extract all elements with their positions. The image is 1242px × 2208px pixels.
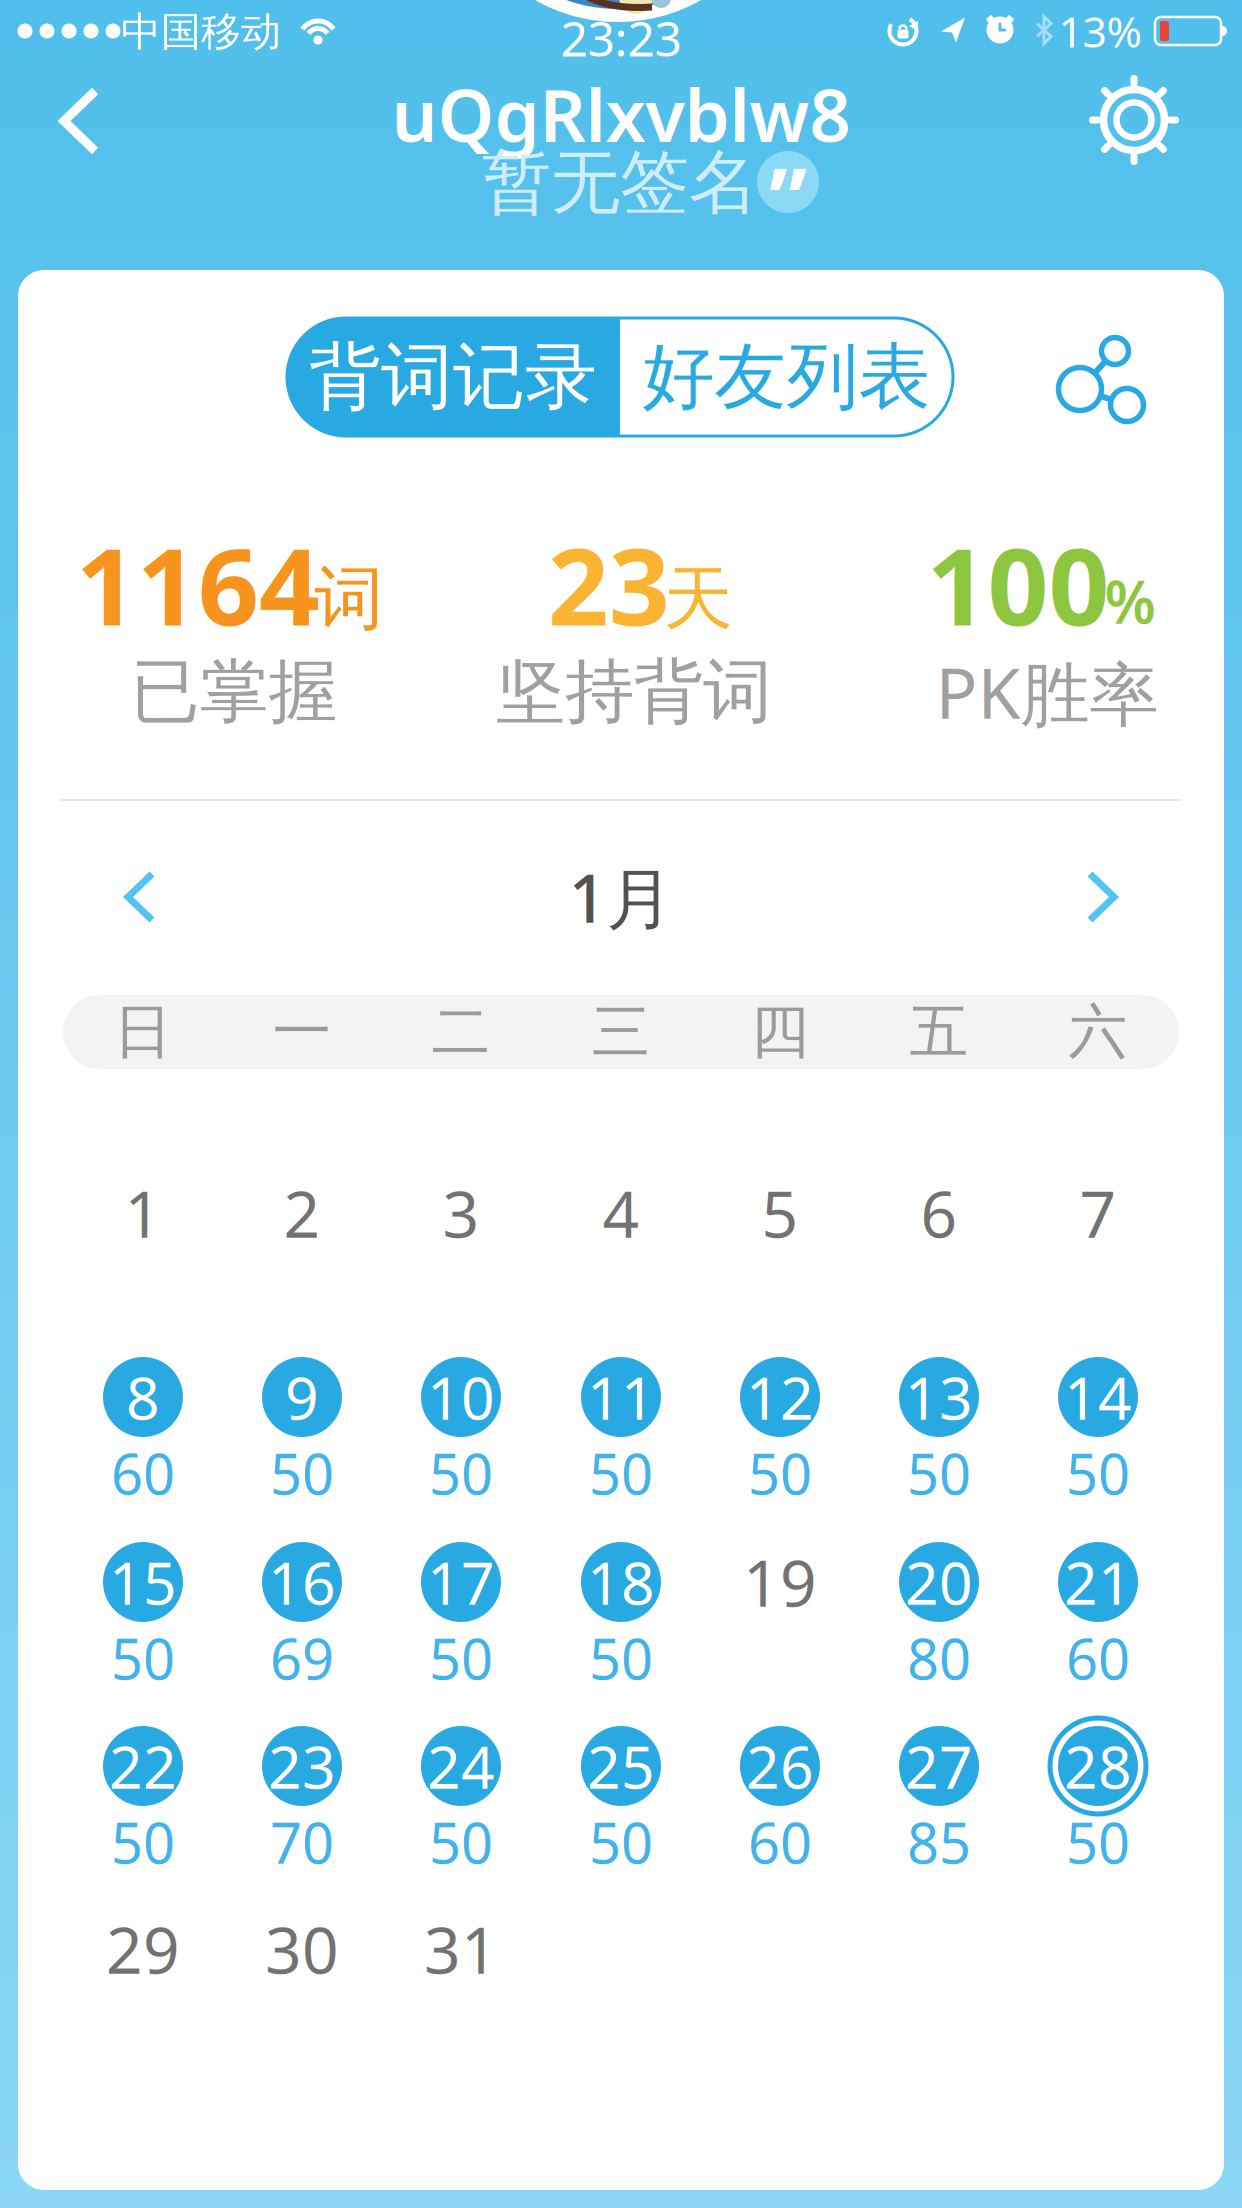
staticText: 词 (314, 556, 383, 642)
staticText: 7 (1079, 1170, 1116, 1255)
staticText: 一 (272, 996, 331, 1068)
staticText: 80 (907, 1621, 971, 1695)
staticText: 50 (111, 1621, 175, 1695)
button[interactable]: 9 (242, 1337, 362, 1457)
button[interactable]: 背词记录 (287, 318, 620, 436)
staticText: 24 (427, 1727, 495, 1805)
button[interactable]: 8 (83, 1337, 203, 1457)
staticText: 50 (1066, 1436, 1130, 1510)
staticText: 12 (746, 1358, 814, 1436)
staticText: 1164 (76, 513, 320, 655)
button[interactable]: 24 (401, 1706, 521, 1826)
staticText: 已掌握 (130, 649, 337, 735)
staticText: 23:23 (560, 6, 681, 70)
staticText: 4 (602, 1170, 639, 1255)
button[interactable]: 28 (1038, 1706, 1158, 1826)
button[interactable]: 13 (879, 1337, 999, 1457)
staticText: ” (769, 141, 807, 255)
staticText: uQgRlxvblw8 (391, 66, 850, 162)
button[interactable]: 11 (561, 1337, 681, 1457)
staticText: 天 (663, 556, 732, 642)
staticText: 50 (270, 1436, 334, 1510)
button[interactable]: 26 (720, 1706, 840, 1826)
staticText: 1月 (568, 853, 673, 941)
button[interactable]: 15 (83, 1522, 203, 1642)
button[interactable]: 好友列表 (620, 318, 953, 436)
button[interactable]: 17 (401, 1522, 521, 1642)
staticText: 15 (109, 1543, 177, 1621)
staticText: 19 (743, 1539, 817, 1624)
button[interactable]: 18 (561, 1522, 681, 1642)
button[interactable]: Back (58, 87, 102, 155)
button[interactable]: Next month (1086, 871, 1118, 923)
staticText: 22 (109, 1727, 177, 1805)
staticText: 50 (589, 1805, 653, 1879)
staticText: 1 (124, 1170, 161, 1255)
staticText: 2 (283, 1170, 320, 1255)
staticText: 11 (587, 1358, 655, 1436)
staticText: 50 (111, 1805, 175, 1879)
staticText: 16 (268, 1543, 336, 1621)
button[interactable]: 25 (561, 1706, 681, 1826)
staticText: 六 (1068, 996, 1127, 1068)
button[interactable]: 23 (242, 1706, 362, 1826)
button[interactable]: Settings (1089, 75, 1179, 165)
staticText: 69 (270, 1621, 334, 1695)
button[interactable]: 21 (1038, 1522, 1158, 1642)
staticText: 100 (926, 513, 1109, 655)
staticText: 31 (424, 1906, 498, 1991)
staticText: 日 (113, 996, 172, 1068)
staticText: 14 (1064, 1358, 1132, 1436)
staticText: 50 (1066, 1805, 1130, 1879)
staticText: 50 (429, 1805, 493, 1879)
staticText: 暂无签名 (482, 140, 758, 226)
button[interactable]: 12 (720, 1337, 840, 1457)
staticText: 30 (265, 1906, 339, 1991)
staticText: 背词记录 (309, 333, 597, 421)
staticText: 三 (591, 996, 650, 1068)
staticText: 13% (1058, 3, 1141, 59)
staticText: 27 (905, 1727, 973, 1805)
staticText: 23 (268, 1727, 336, 1805)
button[interactable]: 20 (879, 1522, 999, 1642)
staticText: 好友列表 (642, 333, 930, 421)
staticText: 50 (748, 1436, 812, 1510)
button[interactable]: 16 (242, 1522, 362, 1642)
staticText: 3 (442, 1170, 479, 1255)
staticText: 8 (126, 1358, 160, 1436)
staticText: 50 (589, 1436, 653, 1510)
staticText: 26 (746, 1727, 814, 1805)
staticText: 17 (427, 1543, 495, 1621)
staticText: 60 (748, 1805, 812, 1879)
staticText: 50 (907, 1436, 971, 1510)
staticText: 21 (1064, 1543, 1132, 1621)
staticText: 中国移动 (121, 7, 281, 56)
staticText: 70 (270, 1805, 334, 1879)
button[interactable]: 签名 (757, 151, 819, 213)
staticText: 50 (589, 1621, 653, 1695)
staticText: 20 (905, 1543, 973, 1621)
staticText: 60 (111, 1436, 175, 1510)
staticText: % (1104, 562, 1155, 640)
staticText: 28 (1064, 1727, 1132, 1805)
staticText: 五 (909, 996, 968, 1068)
staticText: 29 (106, 1906, 180, 1991)
staticText: 坚持背词 (496, 649, 772, 735)
button[interactable]: 10 (401, 1337, 521, 1457)
button[interactable]: 27 (879, 1706, 999, 1826)
staticText: 13 (905, 1358, 973, 1436)
staticText: 10 (427, 1358, 495, 1436)
staticText: 60 (1066, 1621, 1130, 1695)
staticText: 9 (285, 1358, 319, 1436)
staticText: 6 (920, 1170, 957, 1255)
staticText: 5 (761, 1170, 798, 1255)
staticText: 二 (431, 996, 490, 1068)
button[interactable]: Share (1032, 325, 1152, 435)
button[interactable]: 14 (1038, 1337, 1158, 1457)
staticText: 50 (429, 1621, 493, 1695)
staticText: PK胜率 (935, 646, 1158, 738)
button[interactable]: Previous month (124, 871, 156, 923)
staticText: 50 (429, 1436, 493, 1510)
staticText: 18 (587, 1543, 655, 1621)
button[interactable]: 22 (83, 1706, 203, 1826)
